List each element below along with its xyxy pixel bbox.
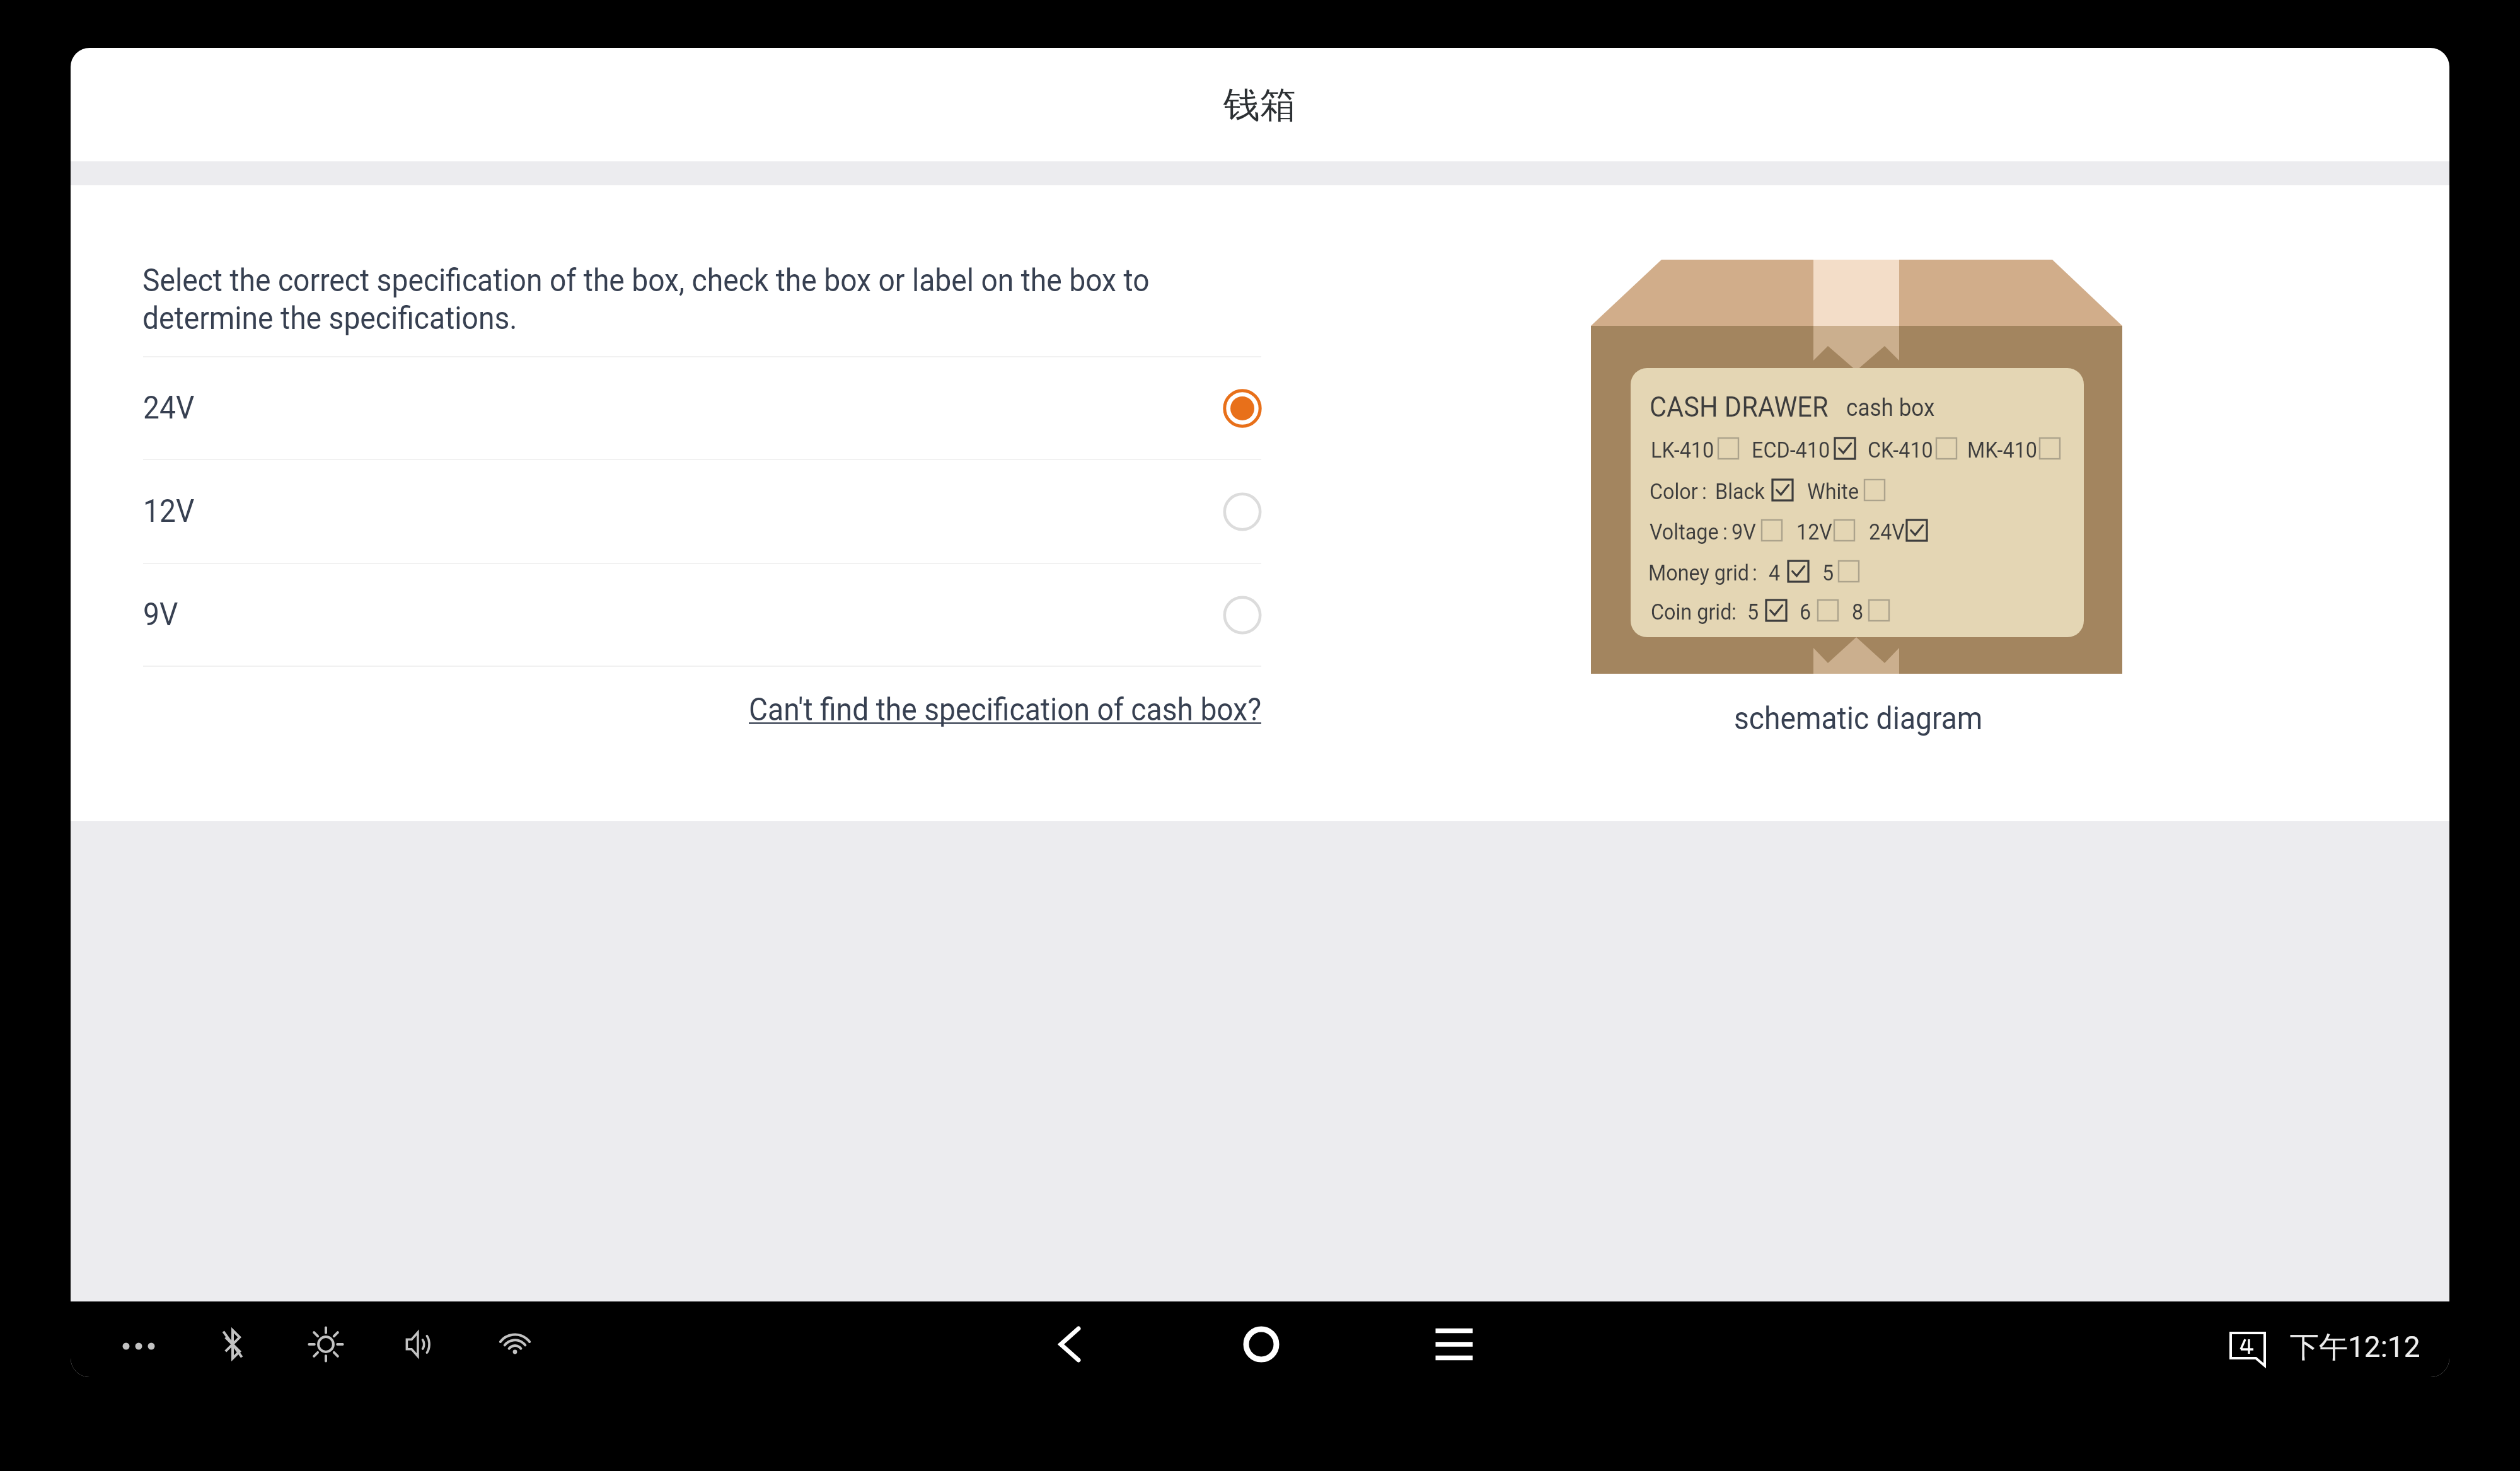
staticText: 12V bbox=[143, 493, 195, 530]
staticText: Black bbox=[1715, 479, 1765, 505]
staticText: : bbox=[1752, 560, 1758, 586]
staticText: 24V bbox=[1869, 519, 1905, 545]
staticText: Can't find the specification of cash box… bbox=[749, 691, 1261, 729]
staticText: : bbox=[1702, 479, 1707, 505]
staticText: Select the correct specification of the … bbox=[142, 262, 1226, 337]
staticText: Color bbox=[1650, 479, 1698, 505]
staticText: : bbox=[1723, 519, 1728, 545]
staticText: cash box bbox=[1846, 394, 1935, 422]
button[interactable]: Input method bbox=[2210, 1307, 2286, 1377]
staticText: 钱箱 bbox=[1223, 82, 1297, 128]
staticText: ECD-410 bbox=[1752, 437, 1830, 463]
button[interactable]: Brightness bbox=[288, 1307, 364, 1377]
button[interactable]: Can't find the specification of cash box… bbox=[749, 686, 1256, 733]
button[interactable]: 12V bbox=[143, 460, 1261, 563]
staticText: Money grid bbox=[1648, 560, 1750, 586]
staticText: LK-410 bbox=[1651, 437, 1714, 463]
button[interactable]: Home bbox=[1223, 1307, 1299, 1377]
button[interactable]: Volume bbox=[381, 1307, 457, 1377]
staticText: CK-410 bbox=[1868, 437, 1933, 463]
staticText: 下午12:12 bbox=[2290, 1329, 2420, 1366]
staticText: 4 bbox=[1769, 560, 1780, 586]
staticText: MK-410 bbox=[1967, 437, 2038, 463]
staticText: 6 bbox=[1800, 599, 1811, 625]
staticText: 12V bbox=[1796, 519, 1833, 545]
staticText: CASH DRAWER bbox=[1650, 390, 1828, 424]
staticText: 24V bbox=[143, 389, 195, 427]
staticText: 9V bbox=[1731, 519, 1756, 545]
staticText: 5 bbox=[1822, 560, 1834, 586]
staticText: 8 bbox=[1852, 599, 1864, 625]
staticText: White bbox=[1807, 479, 1859, 505]
staticText: 9V bbox=[143, 596, 178, 633]
staticText: Voltage bbox=[1650, 519, 1719, 545]
button[interactable]: Wi-Fi bbox=[477, 1307, 553, 1377]
staticText: : bbox=[1731, 599, 1737, 625]
button[interactable]: 24V bbox=[143, 357, 1261, 459]
button[interactable]: 9V bbox=[143, 564, 1261, 666]
button[interactable]: Back bbox=[1032, 1307, 1107, 1377]
staticText: 5 bbox=[1747, 599, 1759, 625]
button[interactable]: More options bbox=[101, 1307, 176, 1377]
staticText: schematic diagram bbox=[1734, 700, 1983, 737]
button[interactable]: 钱箱 bbox=[71, 48, 2449, 161]
staticText: Coin grid bbox=[1651, 599, 1732, 625]
button[interactable]: Recent apps bbox=[1416, 1307, 1492, 1377]
button[interactable]: Bluetooth bbox=[195, 1307, 270, 1377]
